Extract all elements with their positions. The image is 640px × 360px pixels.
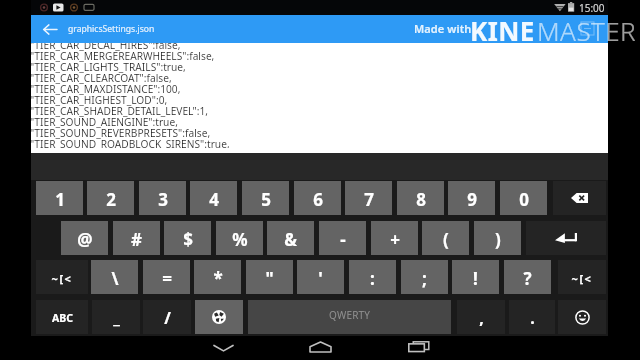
button[interactable]: Backspace: [553, 181, 606, 215]
staticText: MASTER: [537, 13, 637, 48]
button[interactable]: ,: [457, 300, 505, 334]
button[interactable]: Home: [296, 336, 344, 360]
staticText: QWERTY: [329, 308, 371, 322]
staticText: 15:00: [579, 1, 605, 15]
staticText: \: [111, 267, 119, 290]
staticText: 0: [519, 188, 529, 211]
button[interactable]: ': [297, 260, 344, 294]
button[interactable]: 6: [294, 181, 341, 215]
staticText: 3: [158, 188, 168, 211]
staticText: 8: [416, 188, 426, 211]
staticText: (: [443, 228, 449, 251]
button[interactable]: #: [113, 221, 160, 255]
staticText: ,: [479, 307, 484, 329]
staticText: ;: [422, 267, 427, 290]
button[interactable]: 3: [139, 181, 186, 215]
staticText: :: [370, 267, 375, 290]
staticText: ~[<: [571, 271, 593, 286]
button[interactable]: Back: [34, 15, 66, 43]
staticText: ': [318, 267, 323, 290]
button[interactable]: 0: [500, 181, 547, 215]
staticText: /: [164, 307, 171, 329]
button[interactable]: ~[<: [36, 260, 88, 294]
button[interactable]: ?: [504, 260, 551, 294]
staticText: 6: [313, 188, 323, 211]
staticText: ABC: [52, 311, 73, 325]
button[interactable]: Hide keyboard: [199, 336, 247, 360]
button[interactable]: -: [319, 221, 366, 255]
staticText: $: [183, 228, 193, 251]
staticText: ): [495, 228, 501, 251]
button[interactable]: ~[<: [558, 260, 606, 294]
button[interactable]: *: [194, 260, 241, 294]
staticText: graphicsSettings.json: [68, 23, 155, 35]
button[interactable]: ): [474, 221, 521, 255]
staticText: KINE: [470, 13, 535, 48]
staticText: @: [77, 228, 93, 251]
button[interactable]: =: [143, 260, 190, 294]
staticText: =: [162, 267, 172, 290]
button[interactable]: ABC: [36, 300, 88, 334]
button[interactable]: 8: [397, 181, 444, 215]
staticText: Made with: [414, 21, 472, 36]
staticText: *: [213, 267, 223, 290]
staticText: %: [232, 228, 248, 251]
button[interactable]: 7: [345, 181, 392, 215]
button[interactable]: QWERTY: [248, 300, 451, 334]
button[interactable]: %: [216, 221, 263, 255]
button[interactable]: (: [422, 221, 469, 255]
button[interactable]: Emoji: [558, 300, 606, 334]
button[interactable]: _: [92, 300, 140, 334]
button[interactable]: 5: [242, 181, 289, 215]
button[interactable]: ;: [401, 260, 448, 294]
staticText: !: [473, 267, 478, 290]
staticText: 5: [261, 188, 271, 211]
button[interactable]: /: [143, 300, 191, 334]
button[interactable]: ": [246, 260, 293, 294]
staticText: "TIER_CAR_DECAL_HIRES":false, "TIER_CAR_…: [31, 43, 230, 148]
button[interactable]: @: [61, 221, 108, 255]
staticText: ": [265, 267, 274, 290]
button[interactable]: 1: [36, 181, 83, 215]
button[interactable]: !: [452, 260, 499, 294]
staticText: 1: [55, 188, 65, 211]
staticText: 4: [209, 188, 219, 211]
button[interactable]: Enter: [526, 221, 606, 255]
staticText: .: [530, 307, 535, 329]
staticText: _: [113, 307, 120, 329]
button[interactable]: :: [349, 260, 396, 294]
staticText: &: [284, 228, 297, 251]
button[interactable]: \: [91, 260, 138, 294]
staticText: 7: [364, 188, 374, 211]
button[interactable]: Change keyboard: [195, 300, 243, 334]
staticText: -: [340, 228, 346, 251]
button[interactable]: &: [267, 221, 314, 255]
button[interactable]: Recent apps: [394, 336, 442, 360]
staticText: 2: [106, 188, 116, 211]
staticText: ?: [523, 267, 532, 290]
staticText: ~[<: [51, 271, 73, 286]
staticText: 9: [467, 188, 477, 211]
button[interactable]: 9: [448, 181, 495, 215]
staticText: +: [390, 228, 400, 251]
button[interactable]: 4: [190, 181, 237, 215]
button[interactable]: $: [164, 221, 211, 255]
button[interactable]: .: [509, 300, 555, 334]
button[interactable]: +: [371, 221, 418, 255]
staticText: #: [131, 228, 142, 251]
button[interactable]: 2: [87, 181, 134, 215]
